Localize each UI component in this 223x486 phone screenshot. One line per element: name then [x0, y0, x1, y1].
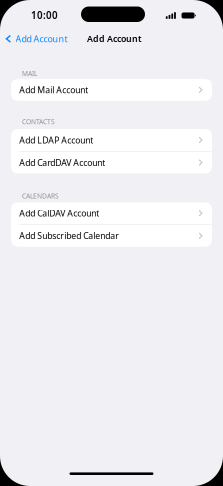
staticText: CONTACTS	[22, 117, 55, 126]
staticText: CALENDARS	[22, 191, 59, 200]
button[interactable]: Add LDAP Account	[11, 129, 212, 151]
button[interactable]: Add CardDAV Account	[11, 152, 212, 174]
staticText: Add Account	[87, 33, 142, 45]
staticText: 10:00	[31, 8, 58, 22]
staticText: Add Mail Account	[19, 84, 88, 96]
button[interactable]: Add Mail Account	[11, 79, 212, 101]
staticText: MAIL	[22, 69, 37, 78]
staticText: Add LDAP Account	[19, 134, 93, 146]
staticText: Add CardDAV Account	[19, 157, 105, 168]
staticText: Add CalDAV Account	[19, 207, 99, 219]
button[interactable]: Add Subscribed Calendar	[11, 225, 212, 247]
button[interactable]: Add CalDAV Account	[11, 202, 212, 224]
button[interactable]: Add Account	[0, 28, 67, 48]
staticText: Add Subscribed Calendar	[19, 230, 119, 242]
staticText: Add Account	[15, 33, 67, 45]
